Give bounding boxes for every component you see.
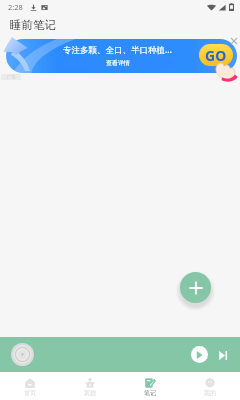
staticText: 查看详情 <box>106 59 130 67</box>
button[interactable]: Close ad <box>231 38 237 44</box>
staticText: 首页 <box>24 389 36 397</box>
staticText: 专注多颗、全口、半口种植… <box>63 44 172 56</box>
button[interactable]: Next track <box>216 348 230 362</box>
staticText: 我的 <box>204 389 216 397</box>
staticText: 睡前笔记 <box>10 18 56 32</box>
staticText: 冥想 <box>84 389 96 397</box>
button[interactable]: 专注多颗、全口、半口种植… <box>6 39 237 73</box>
button[interactable]: 查看详情 <box>62 58 174 68</box>
button[interactable]: 冥想 <box>60 378 120 400</box>
button[interactable]: 笔记 <box>120 378 180 400</box>
staticText: 笔记 <box>144 389 156 397</box>
button[interactable]: 我的 <box>180 378 240 400</box>
staticText: GO <box>205 46 227 65</box>
button[interactable]: Add note <box>180 272 211 303</box>
staticText: 广告 <box>7 74 16 80</box>
button[interactable]: Play <box>191 346 208 363</box>
button[interactable]: 首页 <box>0 378 60 400</box>
button[interactable]: GO <box>199 44 233 66</box>
staticText: 2:28 <box>8 2 23 12</box>
